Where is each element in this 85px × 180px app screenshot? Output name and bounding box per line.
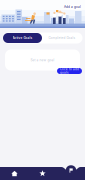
button[interactable]: Active Goals: [3, 33, 42, 43]
button[interactable]: Goals: [32, 167, 52, 180]
button[interactable]: Add goal: [65, 164, 77, 176]
button[interactable]: Add a goal: [64, 4, 81, 9]
staticText: Click to add goals: [60, 68, 79, 74]
button[interactable]: Completed Goals: [42, 33, 82, 43]
staticText: Add a goal: [64, 5, 81, 9]
button[interactable]: Home: [4, 167, 24, 180]
staticText: Active Goals: [12, 36, 32, 40]
staticText: Completed Goals: [48, 36, 75, 40]
staticText: Set a new goal: [30, 58, 54, 62]
button[interactable]: Click to add goals: [57, 68, 82, 74]
